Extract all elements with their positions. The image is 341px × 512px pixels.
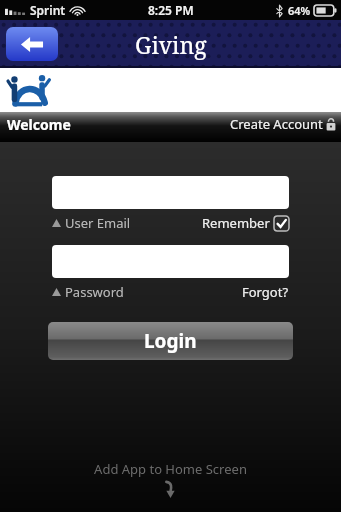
- button[interactable]: User Email: [52, 214, 131, 232]
- button[interactable]: Back: [6, 27, 58, 61]
- button[interactable]: Password: [52, 283, 124, 301]
- button[interactable]: Create Account: [230, 115, 341, 133]
- staticText: Create Account: [230, 115, 323, 133]
- button[interactable]: Forgot?: [242, 283, 289, 301]
- staticText: Login: [144, 328, 197, 354]
- staticText: Welcome: [7, 115, 71, 134]
- staticText: 64%: [288, 3, 311, 18]
- staticText: Sprint: [30, 2, 66, 18]
- staticText: 8:25 PM: [148, 2, 194, 18]
- staticText: Remember: [202, 214, 270, 232]
- button[interactable]: Login: [48, 322, 293, 360]
- button[interactable]: [52, 245, 289, 278]
- staticText: Giving: [135, 29, 207, 60]
- staticText: Add App to Home Screen: [94, 460, 247, 478]
- button[interactable]: Remember: [202, 214, 289, 232]
- button[interactable]: [52, 176, 289, 209]
- staticText: Password: [65, 283, 124, 301]
- staticText: Forgot?: [242, 283, 289, 301]
- staticText: User Email: [65, 214, 131, 232]
- button[interactable]: Add App to Home Screen: [0, 460, 341, 498]
